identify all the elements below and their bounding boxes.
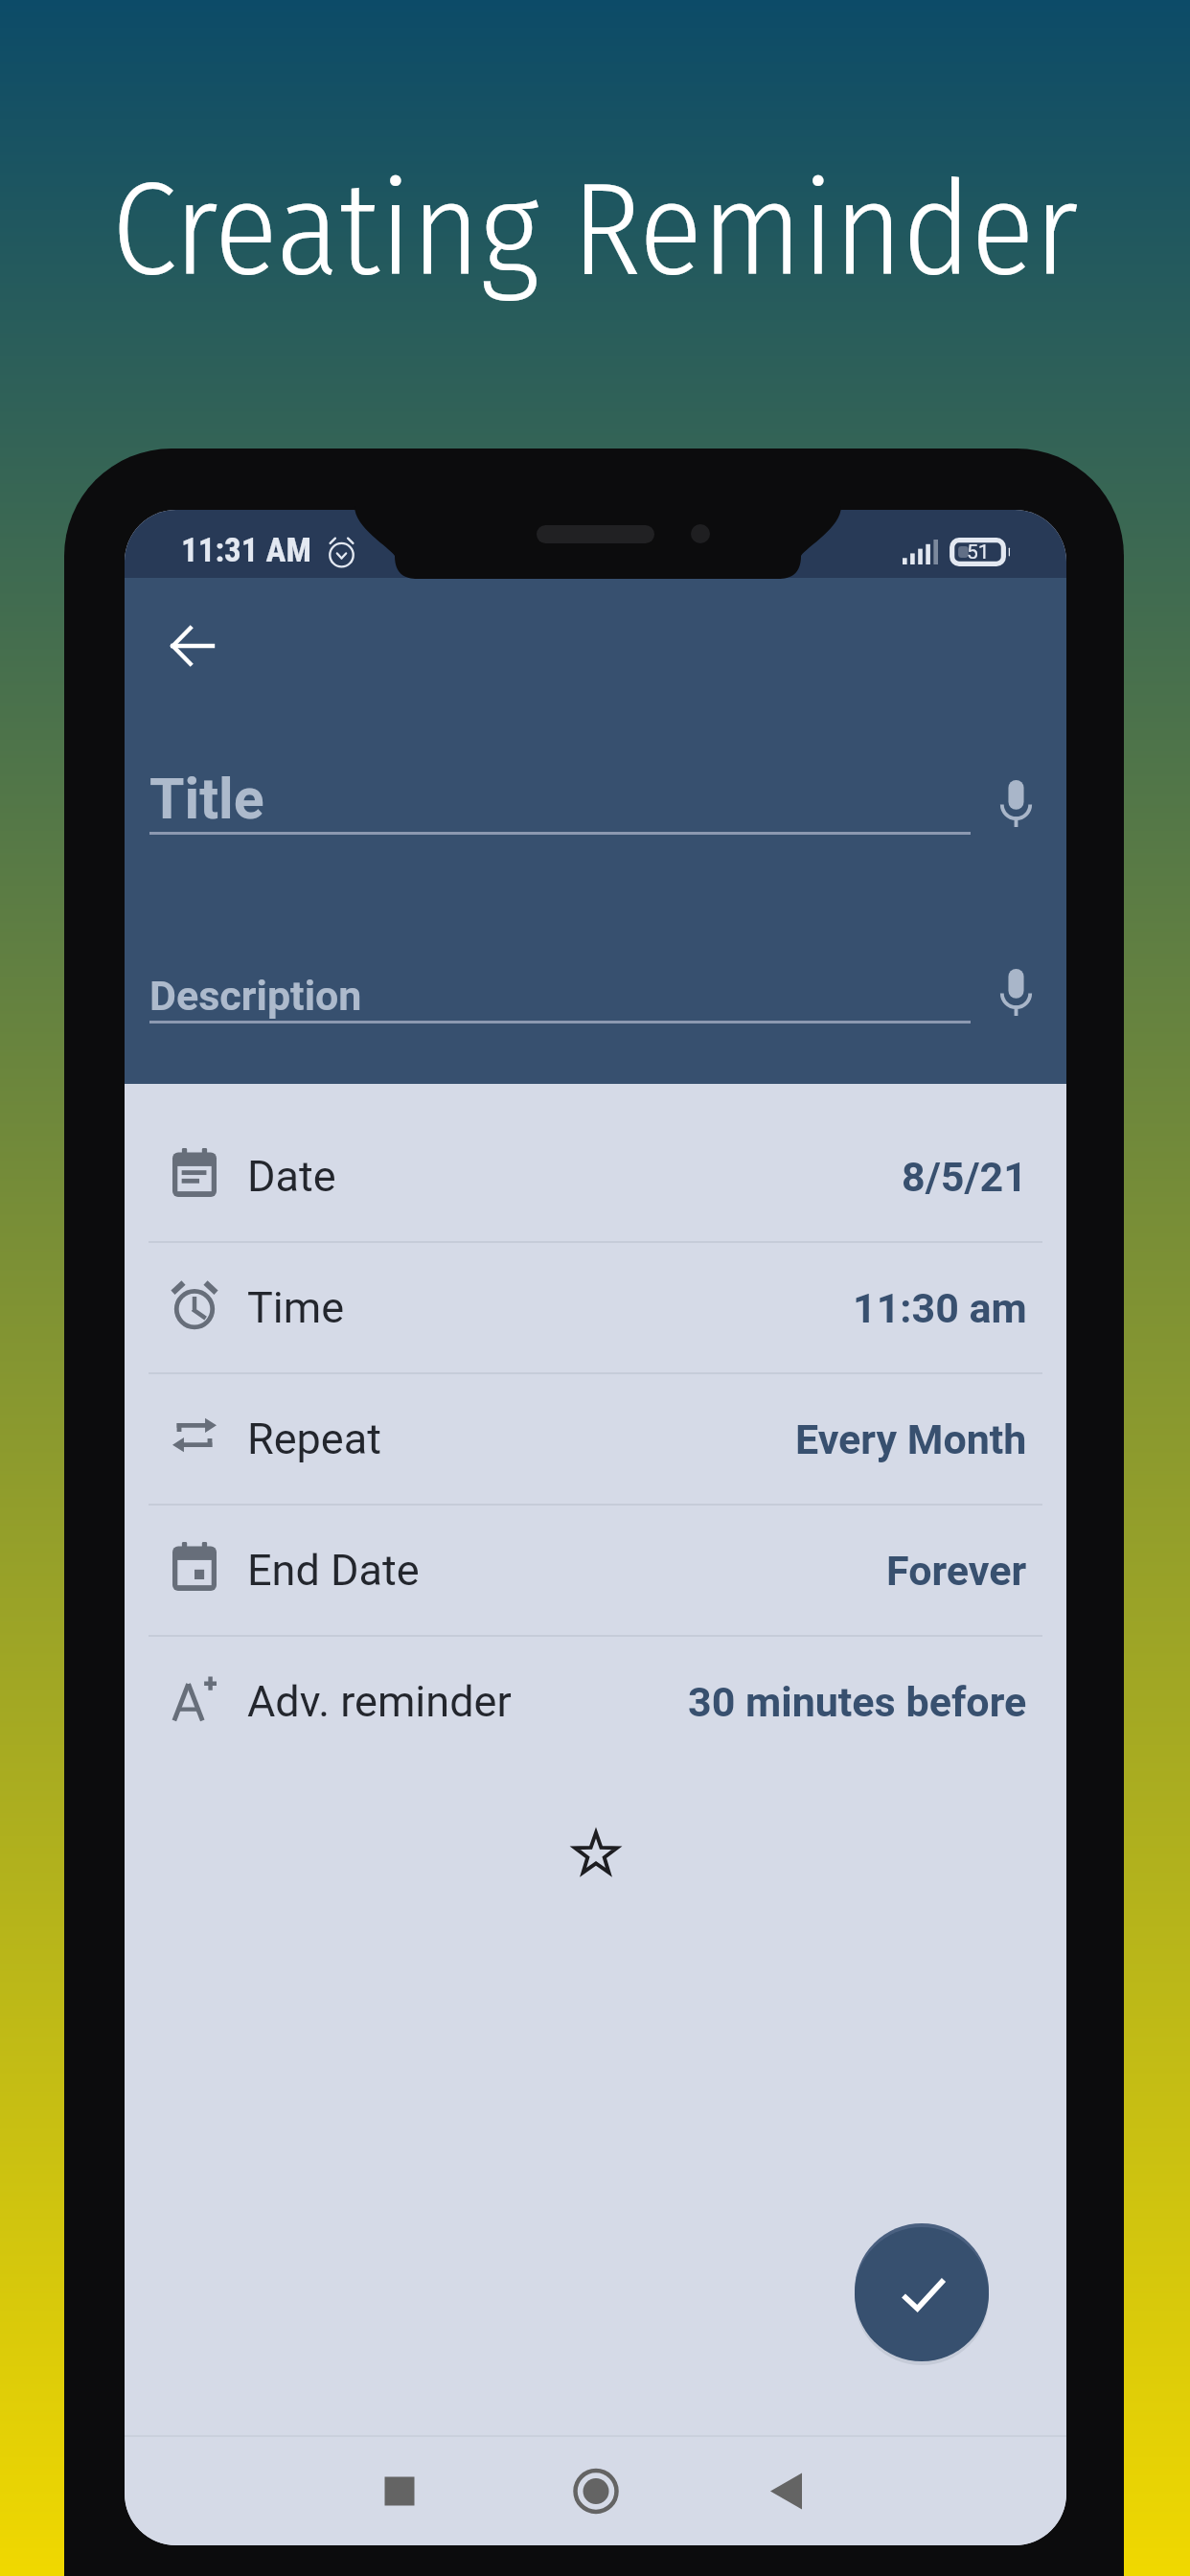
staticText: 11:31 AM (181, 531, 311, 570)
staticText: End Date (247, 1545, 420, 1596)
button[interactable]: Voice input for Description (977, 954, 1054, 1030)
staticText: Creating Reminder (0, 152, 1190, 309)
button[interactable]: Recents (332, 2437, 467, 2545)
staticText: Forever (886, 1547, 1027, 1595)
button[interactable]: End Date (125, 1506, 1066, 1635)
staticText: Title (149, 766, 264, 832)
staticText: Description (149, 972, 362, 1020)
staticText: 11:30 am (853, 1284, 1027, 1332)
button[interactable]: Save reminder (855, 2227, 989, 2361)
button[interactable]: Adv. reminder (125, 1637, 1066, 1766)
button[interactable]: Home (529, 2437, 663, 2545)
button[interactable]: Back (720, 2437, 854, 2545)
staticText: 8/5/21 (902, 1153, 1027, 1201)
button[interactable]: Repeat (125, 1374, 1066, 1504)
button[interactable]: Back (146, 600, 238, 692)
button[interactable]: Favourite (573, 1830, 619, 1876)
staticText: Every Month (795, 1415, 1027, 1463)
staticText: Time (247, 1282, 345, 1333)
button[interactable]: Date (125, 1112, 1066, 1241)
staticText: Date (247, 1151, 336, 1202)
staticText: Adv. reminder (247, 1676, 512, 1727)
staticText: 51 (967, 540, 990, 564)
button[interactable]: Voice input for Title (977, 765, 1054, 841)
staticText: 30 minutes before (688, 1678, 1027, 1726)
button[interactable]: Time (125, 1243, 1066, 1372)
staticText: Repeat (247, 1414, 381, 1464)
